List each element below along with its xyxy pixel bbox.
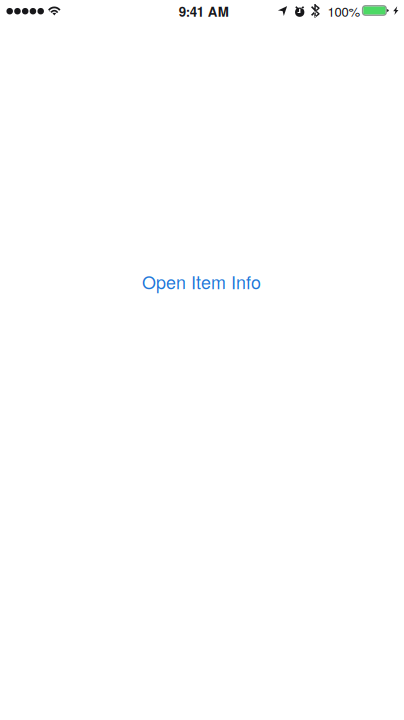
staticText: 100% bbox=[327, 2, 360, 20]
staticText: 9:41 AM bbox=[179, 2, 229, 21]
staticText: Open Item Info bbox=[142, 269, 261, 294]
button[interactable]: Open Item Info bbox=[142, 269, 261, 294]
